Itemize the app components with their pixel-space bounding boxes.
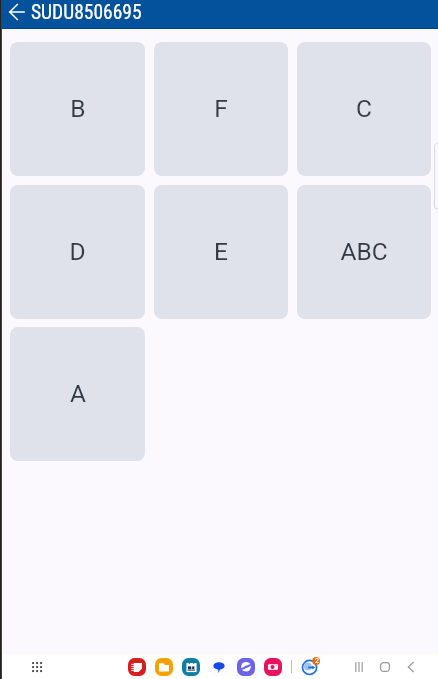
staticText: 2: [315, 657, 319, 665]
staticText: D: [69, 237, 86, 266]
button[interactable]: Camera: [262, 654, 284, 679]
button[interactable]: E: [154, 185, 288, 319]
button[interactable]: ABC: [297, 185, 431, 319]
button[interactable]: Internet: [235, 654, 257, 679]
staticText: SUDU8506695: [31, 1, 142, 24]
button[interactable]: Calendar: [180, 654, 202, 679]
button[interactable]: Navigate up: [1, 0, 32, 23]
button[interactable]: C: [297, 42, 431, 176]
button[interactable]: B: [10, 42, 145, 176]
staticText: F: [214, 94, 228, 123]
button[interactable]: D: [10, 185, 145, 319]
button[interactable]: Smart Switch: [299, 654, 321, 679]
button[interactable]: Apps: [25, 654, 48, 679]
staticText: ABC: [340, 237, 388, 266]
button[interactable]: Recents: [348, 654, 370, 679]
staticText: E: [214, 237, 228, 266]
button[interactable]: Home: [374, 654, 396, 679]
button[interactable]: A: [10, 327, 145, 461]
button[interactable]: Back: [400, 654, 422, 679]
staticText: A: [70, 379, 86, 408]
button[interactable]: Messages: [208, 654, 230, 679]
staticText: B: [70, 94, 86, 123]
staticText: C: [356, 94, 372, 123]
button[interactable]: F: [154, 42, 288, 176]
button[interactable]: Samsung Notes: [126, 654, 148, 679]
button[interactable]: My Files: [153, 654, 175, 679]
